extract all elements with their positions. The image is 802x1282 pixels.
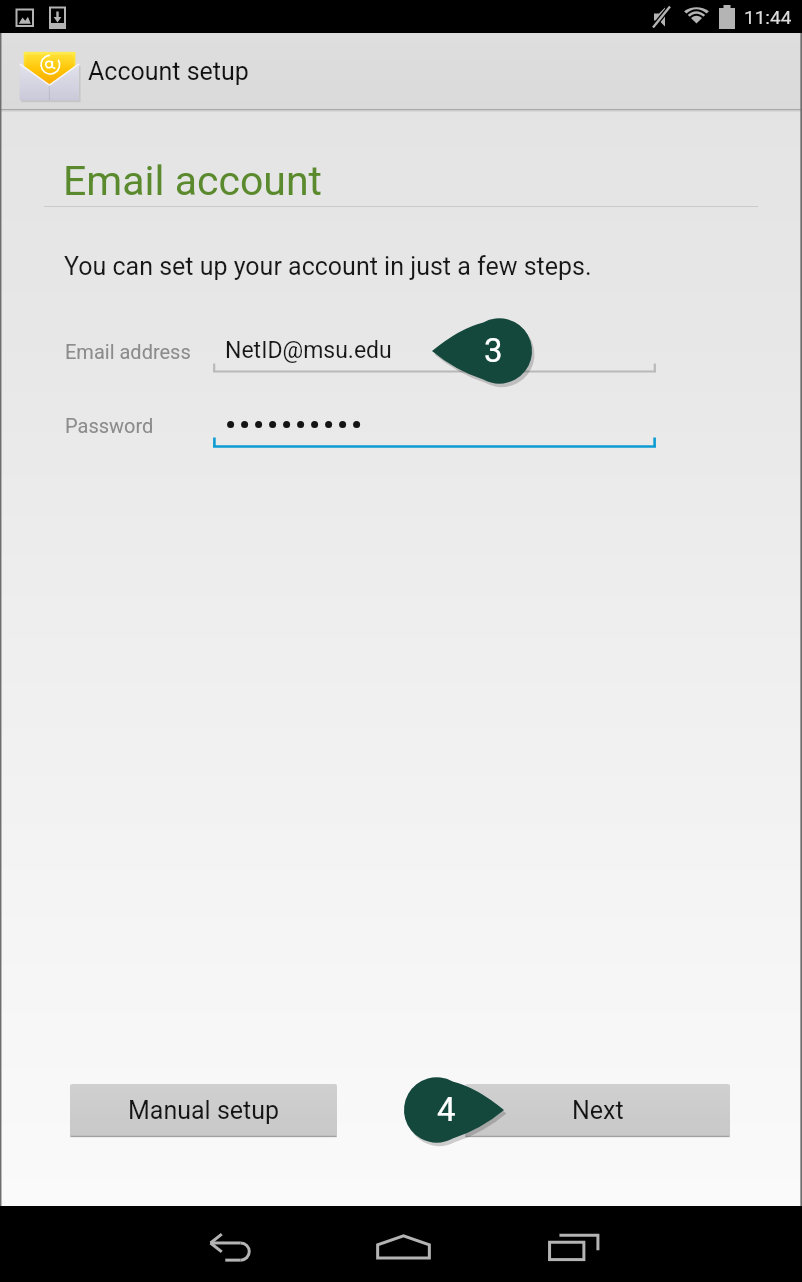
button[interactable]: Manual setup [70,1084,337,1137]
staticText: Manual setup [128,1096,280,1125]
staticText: NetID@msu.edu [225,337,392,364]
button[interactable]: Next [465,1084,730,1137]
staticText: Email account [63,157,322,205]
staticText: 3 [484,331,503,370]
button[interactable]: Recents [521,1217,627,1277]
button[interactable]: Home [350,1217,456,1277]
staticText: Next [572,1096,624,1125]
button[interactable]: NetID@msu.edu [212,320,657,374]
staticText: You can set up your account in just a fe… [64,252,592,281]
staticText: 11:44 [744,6,792,28]
button[interactable] [212,395,657,449]
staticText: 4 [437,1090,456,1129]
staticText: Password [65,414,154,437]
button[interactable]: Back [178,1217,284,1277]
staticText: Account setup [88,57,249,86]
staticText: Email address [65,340,191,363]
